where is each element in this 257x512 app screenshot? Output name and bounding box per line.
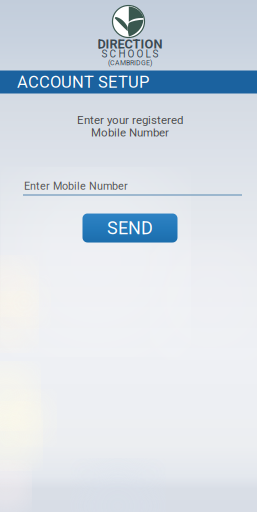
staticText: ACCOUNT SETUP (17, 72, 149, 92)
staticText: DIRECTION (97, 36, 162, 51)
staticText: S C H O O L S (101, 48, 158, 60)
staticText: (CAMBRIDGE) (108, 59, 152, 67)
button[interactable]: SEND (82, 213, 177, 242)
staticText: Enter Mobile Number (24, 180, 128, 192)
staticText: Mobile Number (91, 126, 169, 139)
staticText: Enter your registered (77, 113, 183, 127)
staticText: SEND (107, 217, 153, 239)
